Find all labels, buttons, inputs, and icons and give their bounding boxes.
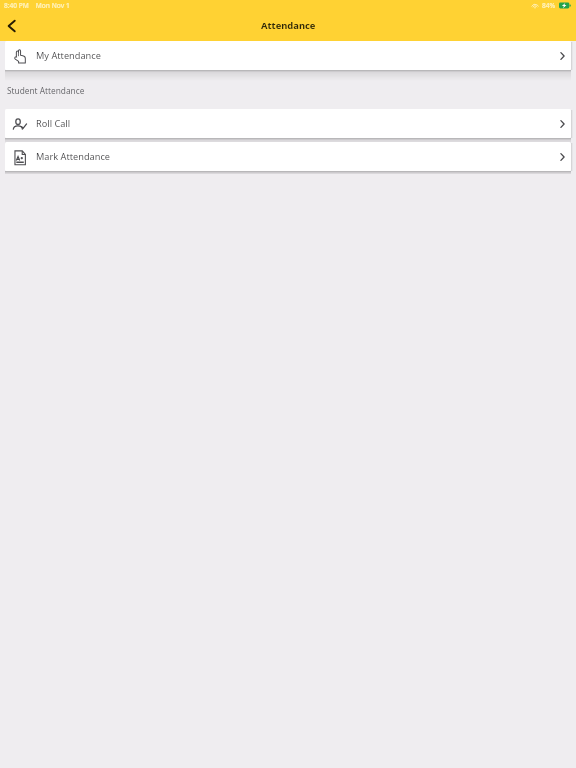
other: Battery charging 84 percent <box>559 2 571 9</box>
staticText: Attendance <box>261 19 316 32</box>
staticText: Roll Call <box>36 117 71 130</box>
button[interactable]: Roll Call <box>5 109 571 138</box>
other: Wi-Fi <box>531 3 539 9</box>
button[interactable]: Back <box>0 15 22 37</box>
staticText: 8:40 PM Mon Nov 1 <box>4 1 70 10</box>
button[interactable]: My Attendance <box>5 41 571 70</box>
staticText: 84% <box>542 1 556 10</box>
button[interactable]: Mark Attendance <box>5 142 571 171</box>
staticText: Mark Attendance <box>36 150 111 163</box>
staticText: Student Attendance <box>7 85 85 96</box>
staticText: My Attendance <box>36 49 101 62</box>
